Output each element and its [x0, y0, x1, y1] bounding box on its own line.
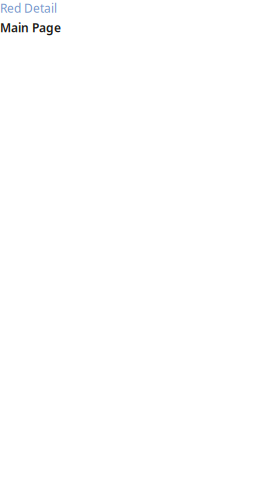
staticText: Red Detail: [0, 0, 57, 16]
staticText: Main Page: [0, 19, 61, 36]
